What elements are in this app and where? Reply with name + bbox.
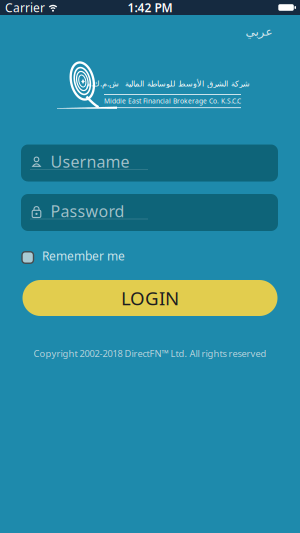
- button[interactable]: Remember me: [22, 249, 120, 264]
- staticText: LOGIN: [121, 286, 179, 310]
- staticText: Username: [50, 151, 129, 172]
- staticText: Middle East Financial Brokerage Co. K.S.…: [104, 96, 241, 105]
- button[interactable]: LOGIN: [22, 280, 277, 316]
- staticText: Password: [50, 200, 124, 222]
- button[interactable]: Password: [21, 194, 278, 231]
- staticText: 1:42 PM: [127, 0, 172, 15]
- button[interactable]: Username: [21, 144, 278, 181]
- staticText: Carrier: [5, 0, 45, 15]
- staticText: عربي: [245, 25, 272, 38]
- staticText: شركة الشرق الأوسط للوساطة المالية ش.م.ك.…: [85, 78, 249, 89]
- staticText: Copyright 2002-2018 DirectFN™ Ltd. All r…: [33, 347, 266, 360]
- button[interactable]: عربي: [245, 25, 272, 38]
- staticText: Remember me: [42, 248, 125, 264]
